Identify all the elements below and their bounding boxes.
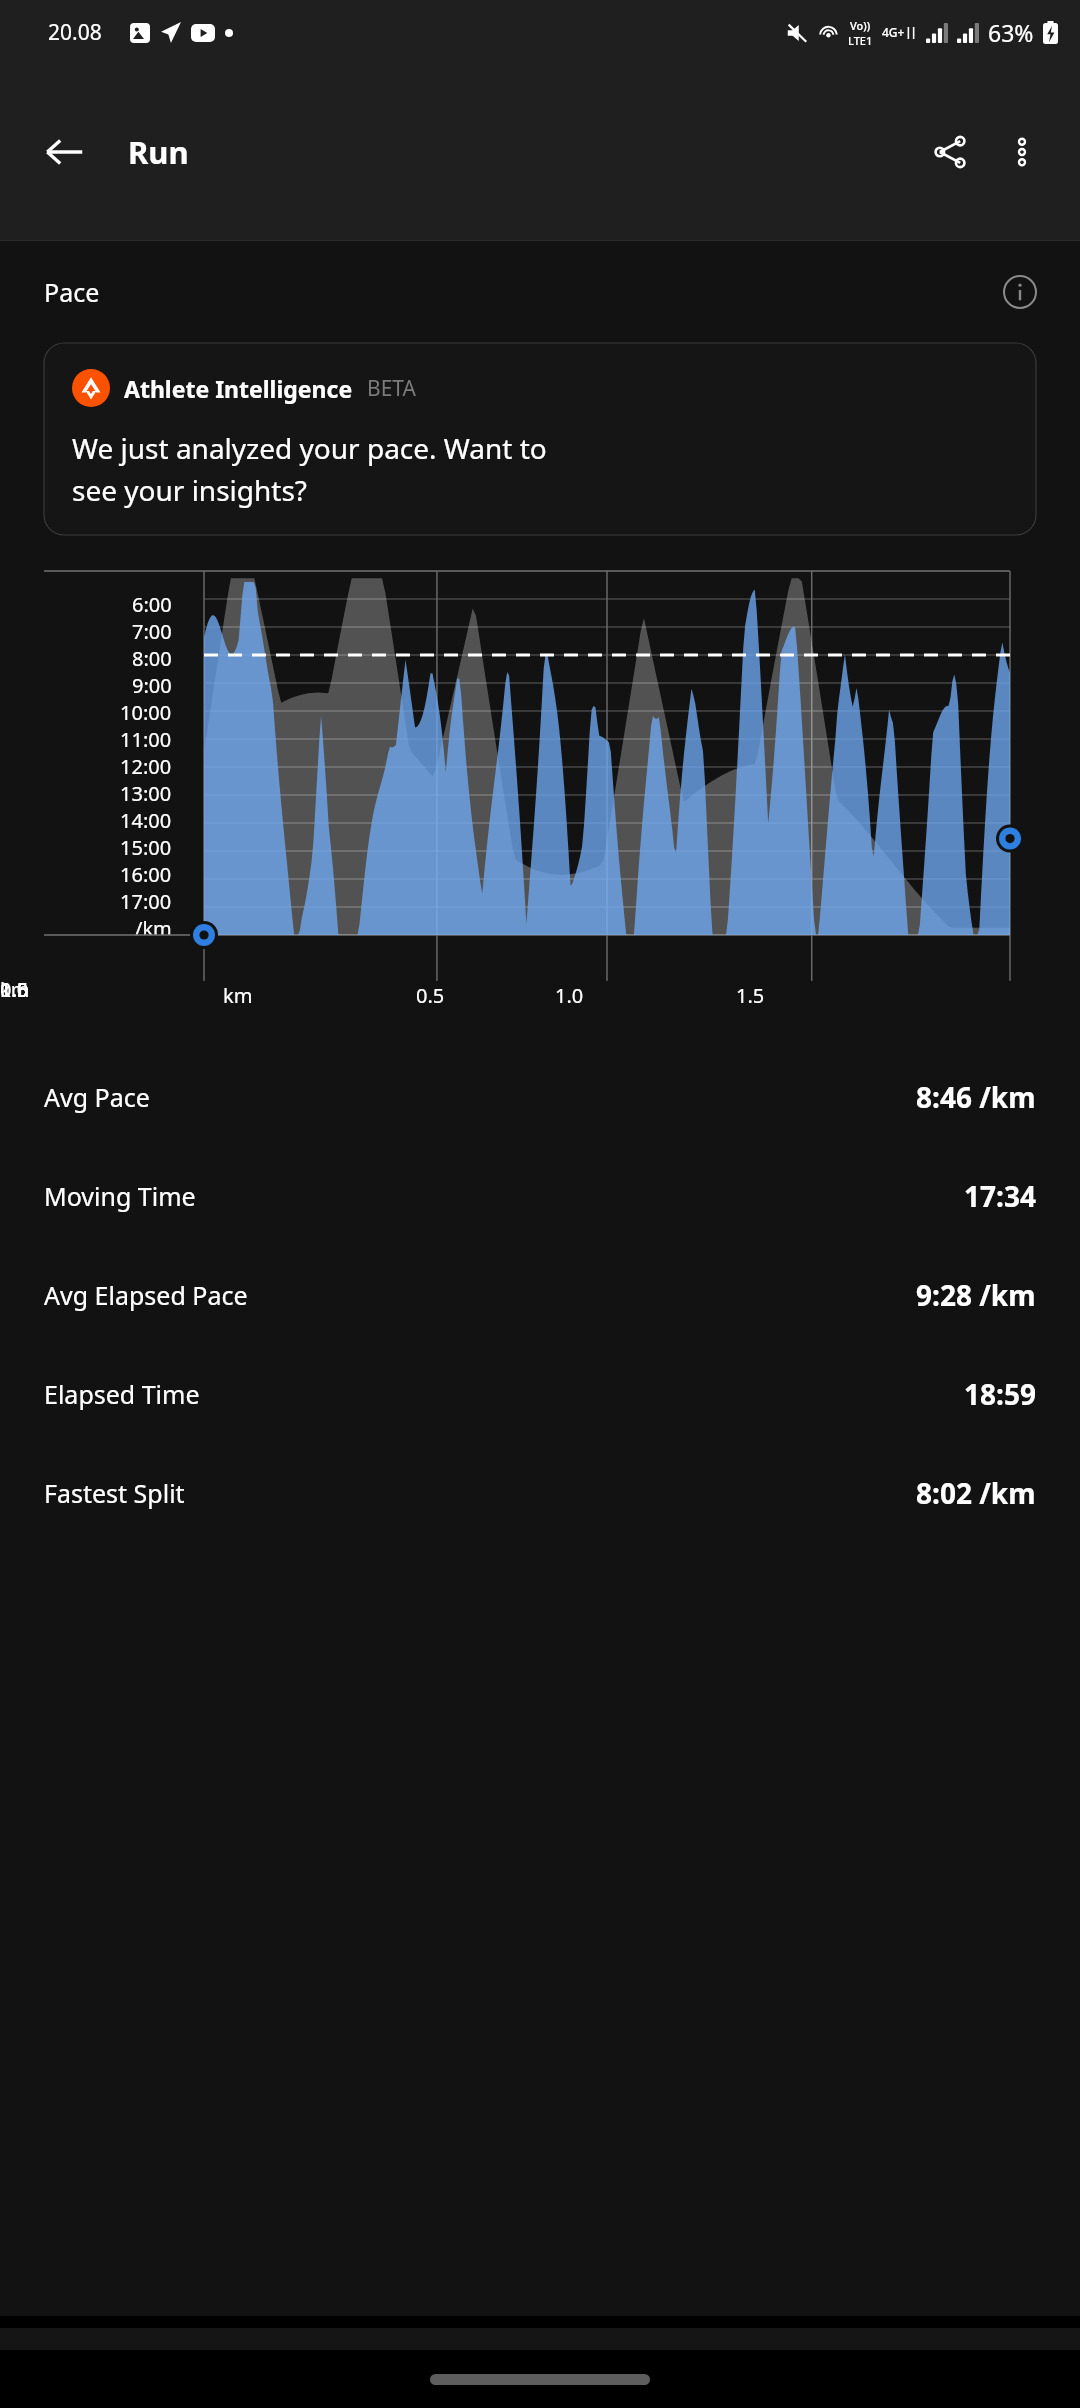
staticText: 18:59 [964,1375,1036,1413]
button[interactable]: Back [28,116,100,188]
staticText: Pace [44,275,100,309]
staticText: 14:00 [120,807,172,834]
staticText: Vo)) [850,18,871,33]
staticText: 0.5 [416,982,445,1009]
staticText: 1.5 [0,976,29,1003]
staticText: km [0,976,30,1003]
button[interactable]: Fastest Split [0,1443,1080,1542]
staticText: Elapsed Time [44,1377,200,1411]
staticText: 16:00 [120,861,172,888]
staticText: 17:34 [964,1177,1036,1215]
staticText: 13:00 [120,780,172,807]
staticText: 4G+ [882,24,905,40]
staticText: LTE1 [848,33,873,48]
staticText: km [223,982,253,1009]
staticText: 6:00 [132,591,172,618]
staticText: 11:00 [120,726,172,753]
staticText: 8:46 /km [916,1078,1036,1116]
staticText: Moving Time [44,1179,196,1213]
staticText: BETA [367,374,416,403]
staticText: 8:02 /km [916,1474,1036,1512]
staticText: 0.5 [0,976,29,1003]
button[interactable]: Elapsed Time [0,1344,1080,1443]
button[interactable]: Info [990,262,1050,322]
button[interactable]: Athlete Intelligence [44,343,1036,535]
staticText: 63% [988,17,1034,48]
staticText: 9:00 [132,672,172,699]
staticText: We just analyzed your pace. Want to see … [72,429,547,509]
button[interactable]: Moving Time [0,1146,1080,1245]
staticText: Run [128,131,189,173]
button[interactable]: Avg Elapsed Pace [0,1245,1080,1344]
staticText: Avg Pace [44,1080,150,1114]
button[interactable]: Avg Pace [0,1047,1080,1146]
staticText: 12:00 [120,753,172,780]
staticText: 20.08 [48,18,102,47]
staticText: 8:00 [132,645,172,672]
staticText: 10:00 [120,699,172,726]
staticText: 1.5 [736,982,765,1009]
staticText: Fastest Split [44,1476,185,1510]
staticText: 1.0 [0,976,29,1003]
staticText: 15:00 [120,834,172,861]
staticText: 17:00 [120,888,172,915]
button[interactable]: More options [986,116,1058,188]
staticText: 1.0 [555,982,584,1009]
staticText: /km [135,915,172,935]
staticText: 9:28 /km [916,1276,1036,1314]
staticText: Athlete Intelligence [124,373,353,404]
staticText: Avg Elapsed Pace [44,1278,248,1312]
button[interactable]: Share [914,116,986,188]
staticText: 7:00 [132,618,172,645]
